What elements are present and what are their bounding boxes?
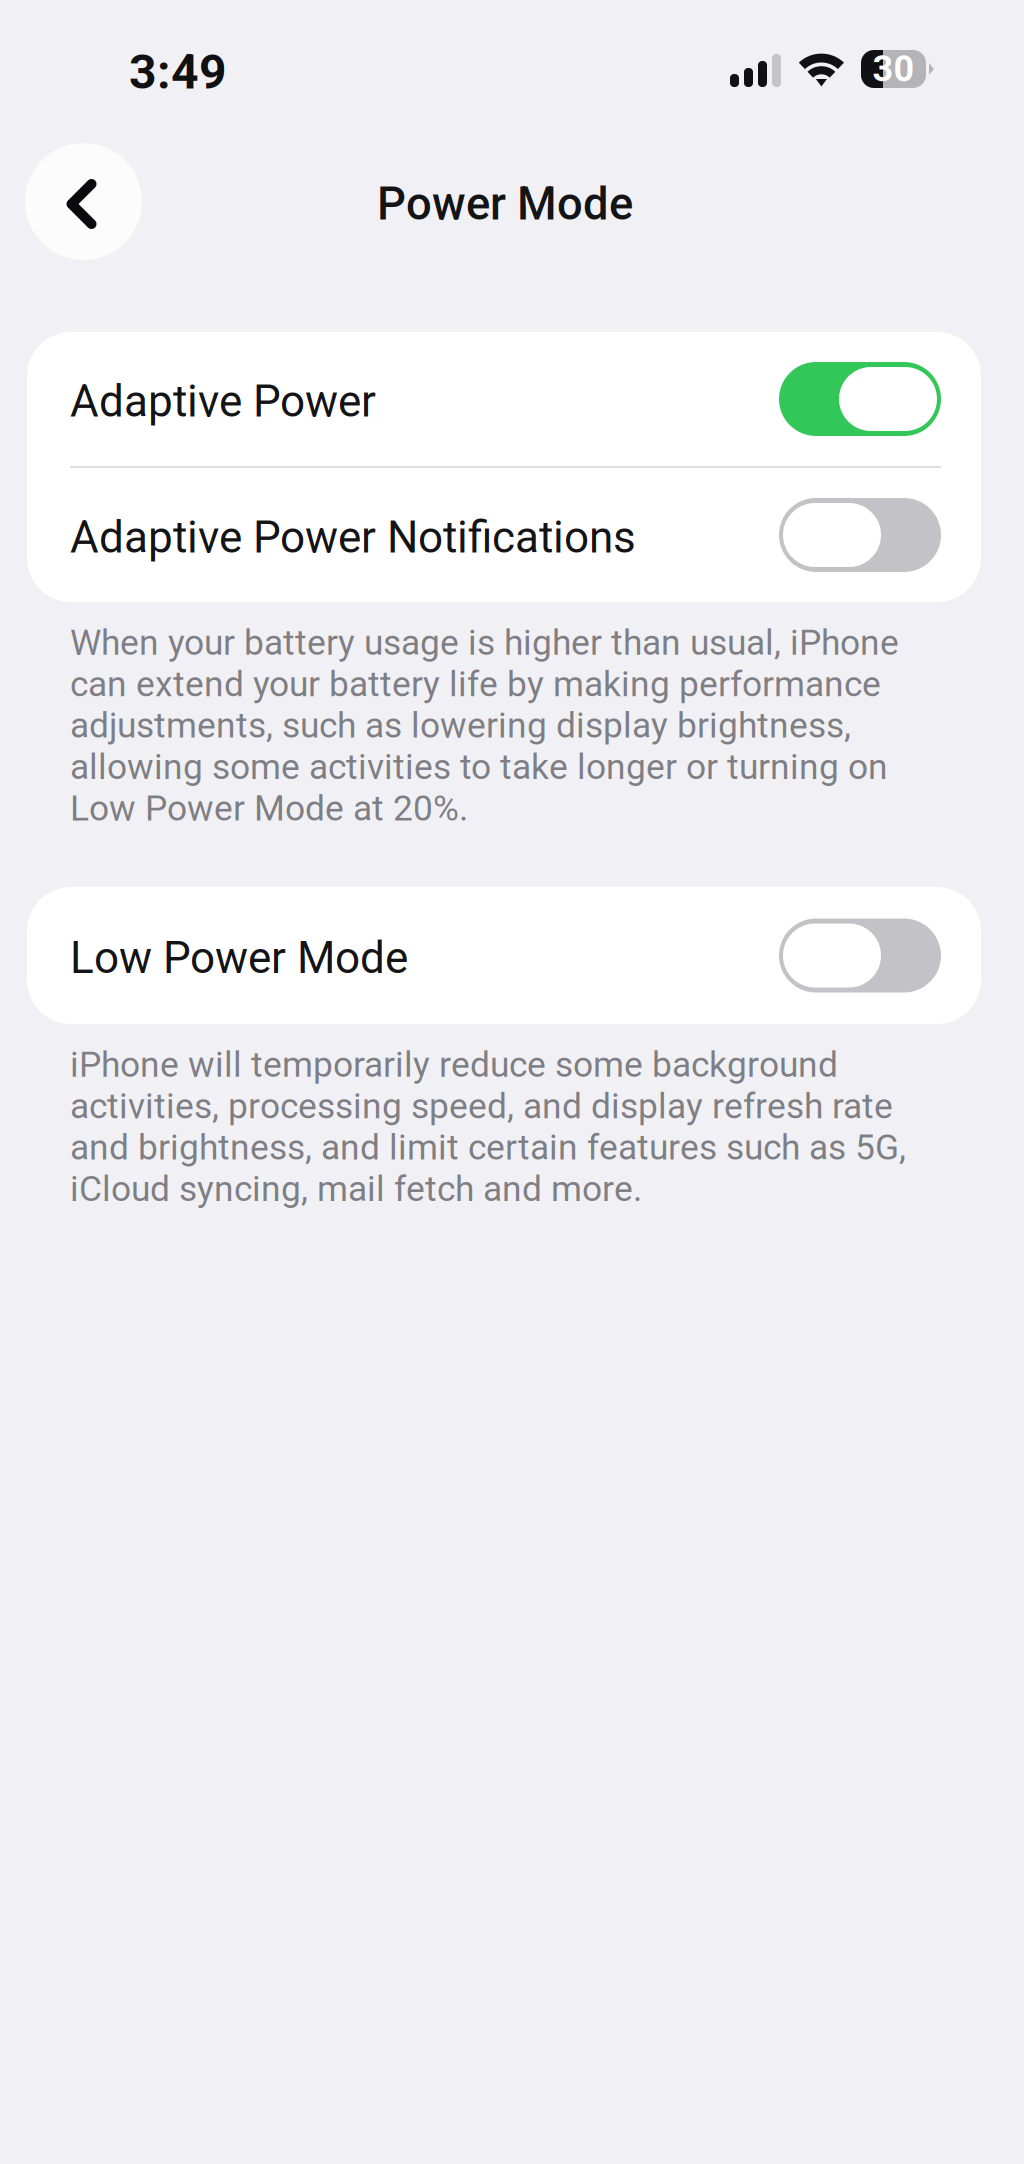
staticText: Low Power Mode	[70, 932, 408, 984]
staticText: Power Mode	[377, 177, 633, 230]
button[interactable]: Adaptive Power	[27, 332, 981, 466]
staticText: 30	[872, 48, 914, 90]
staticText: When your battery usage is higher than u…	[70, 622, 899, 829]
button[interactable]: Low Power Mode	[27, 888, 981, 1022]
staticText: Adaptive Power Notifications	[70, 512, 636, 563]
staticText: Adaptive Power	[70, 376, 376, 427]
staticText: 3:49	[129, 44, 227, 100]
staticText: iPhone will temporarily reduce some back…	[70, 1044, 906, 1210]
button[interactable]: Adaptive Power Notifications	[27, 468, 981, 602]
button[interactable]: Back	[25, 143, 142, 260]
